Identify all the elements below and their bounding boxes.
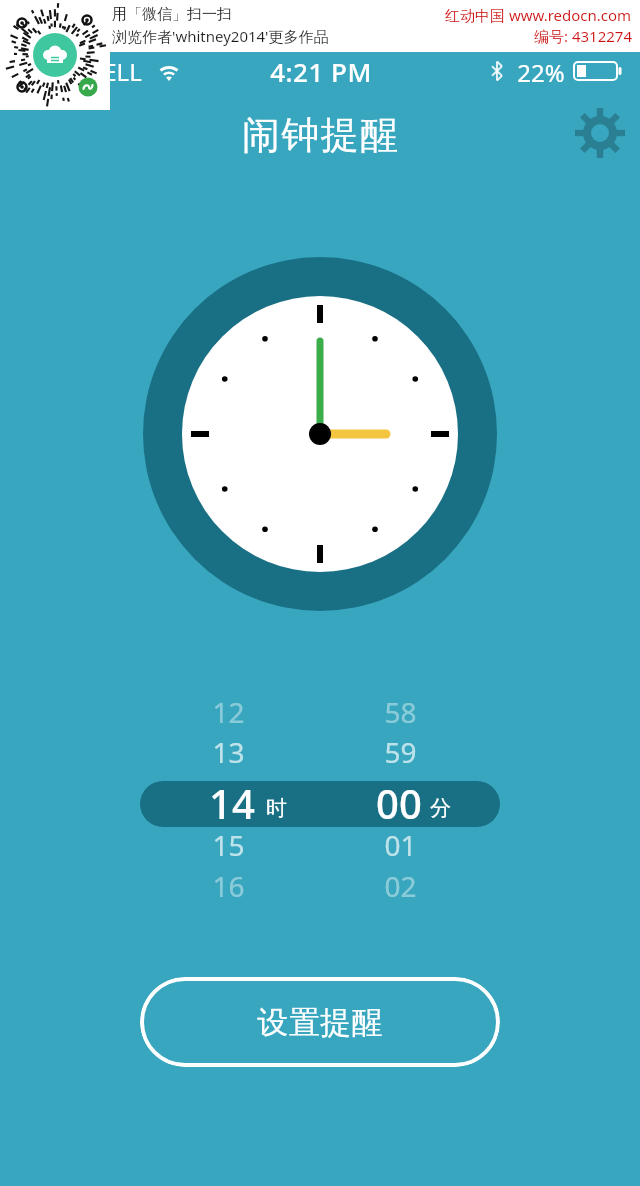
staticText: 浏览作者'whitney2014'更多作品 — [112, 26, 329, 46]
staticText: 4:21 PM — [270, 54, 372, 89]
button[interactable] — [140, 825, 500, 865]
button[interactable]: 设置提醒 — [140, 977, 500, 1067]
staticText: 59 — [384, 733, 417, 771]
staticText: 设置提醒 — [257, 1003, 383, 1042]
staticText: 22% — [517, 56, 565, 86]
button[interactable] — [140, 732, 500, 772]
button[interactable] — [140, 866, 500, 906]
button[interactable] — [574, 107, 626, 159]
staticText: 14 — [209, 776, 255, 830]
staticText: 00 — [376, 776, 422, 830]
button[interactable] — [140, 781, 500, 827]
staticText: 01 — [384, 826, 417, 864]
staticText: 编号: 4312274 — [534, 26, 632, 46]
staticText: 58 — [384, 693, 417, 731]
staticText: 闹钟提醒 — [241, 111, 399, 159]
button[interactable] — [140, 692, 500, 732]
staticText: 13 — [212, 733, 245, 771]
staticText: 红动中国 www.redocn.com — [445, 5, 632, 25]
staticText: 时 — [266, 795, 287, 821]
staticText: 02 — [384, 867, 417, 905]
staticText: 12 — [212, 693, 245, 731]
staticText: 16 — [212, 867, 245, 905]
staticText: 分 — [430, 795, 451, 821]
staticText: 用「微信」扫一扫 — [112, 5, 232, 24]
staticText: ELL — [103, 55, 142, 87]
staticText: 15 — [212, 826, 245, 864]
